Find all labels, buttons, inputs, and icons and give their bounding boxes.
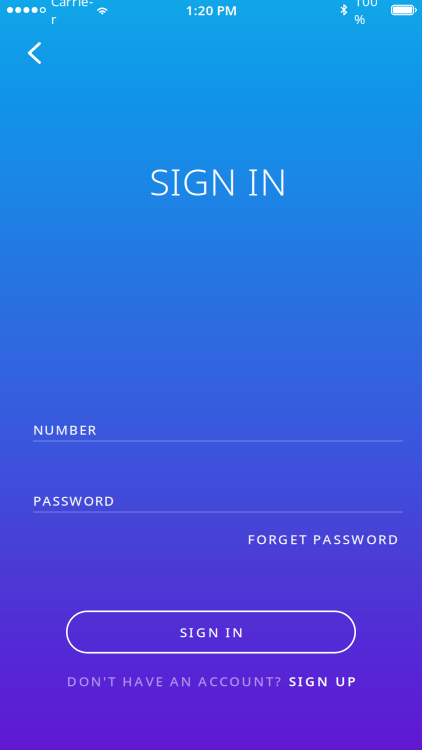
staticText: F <box>247 530 254 548</box>
staticText: O <box>256 530 266 548</box>
staticText: A <box>198 672 207 690</box>
button[interactable]: F <box>28 528 398 550</box>
staticText: N <box>91 672 101 690</box>
staticText: A <box>42 492 51 509</box>
staticText: R <box>87 421 95 438</box>
staticText: ? <box>275 672 281 690</box>
staticText: ' <box>103 672 106 690</box>
staticText: S <box>289 672 296 690</box>
staticText: N <box>209 156 236 206</box>
button[interactable]: P <box>33 489 403 512</box>
staticText: S <box>180 623 187 641</box>
staticText: A <box>134 672 143 690</box>
staticText: I <box>298 672 303 690</box>
staticText: R <box>268 530 276 548</box>
staticText: T <box>108 672 115 690</box>
staticText: D <box>388 530 398 548</box>
staticText: E <box>79 421 86 438</box>
staticText: S <box>333 530 340 548</box>
staticText: U <box>44 421 54 438</box>
staticText: P <box>347 672 355 690</box>
staticText: H <box>122 672 132 690</box>
staticText: O <box>229 672 239 690</box>
staticText: N <box>232 623 242 641</box>
button[interactable]: S <box>281 672 355 690</box>
staticText: I <box>225 623 230 641</box>
staticText: E <box>155 672 162 690</box>
staticText: C <box>209 672 217 690</box>
staticText: U <box>335 672 345 690</box>
staticText: S <box>61 492 68 509</box>
staticText: G <box>196 623 206 641</box>
button[interactable]: Back <box>16 31 72 75</box>
staticText: O <box>83 492 93 509</box>
staticText: P <box>33 492 41 509</box>
staticText: N <box>260 156 287 206</box>
staticText: I <box>189 623 194 641</box>
staticText: 1:20 PM <box>185 1 236 19</box>
staticText: V <box>145 672 153 690</box>
staticText: 100% <box>354 0 378 28</box>
staticText: R <box>378 530 386 548</box>
staticText: D <box>104 492 114 509</box>
staticText: I <box>170 156 182 206</box>
staticText: Carrier <box>51 0 93 28</box>
staticText: S <box>342 530 349 548</box>
staticText: I <box>247 156 259 206</box>
staticText: W <box>351 530 364 548</box>
staticText: G <box>305 672 315 690</box>
staticText: S <box>53 492 60 509</box>
staticText: O <box>79 672 89 690</box>
button[interactable]: N <box>33 418 403 441</box>
staticText: N <box>181 672 191 690</box>
staticText: A <box>323 530 332 548</box>
staticText: G <box>182 156 209 206</box>
staticText: D <box>67 672 77 690</box>
staticText: R <box>95 492 103 509</box>
staticText: G <box>278 530 288 548</box>
staticText: N <box>33 421 43 438</box>
staticText: O <box>366 530 376 548</box>
staticText: P <box>313 530 321 548</box>
staticText: U <box>241 672 251 690</box>
staticText: N <box>317 672 328 690</box>
staticText: W <box>69 492 82 509</box>
button[interactable]: S <box>66 610 356 653</box>
staticText: M <box>56 421 68 438</box>
staticText: A <box>170 672 179 690</box>
staticText: C <box>219 672 227 690</box>
staticText: E <box>290 530 297 548</box>
staticText: S <box>149 156 169 206</box>
staticText: N <box>208 623 218 641</box>
staticText: T <box>299 530 306 548</box>
staticText: B <box>69 421 78 438</box>
staticText: N <box>253 672 263 690</box>
staticText: T <box>266 672 273 690</box>
